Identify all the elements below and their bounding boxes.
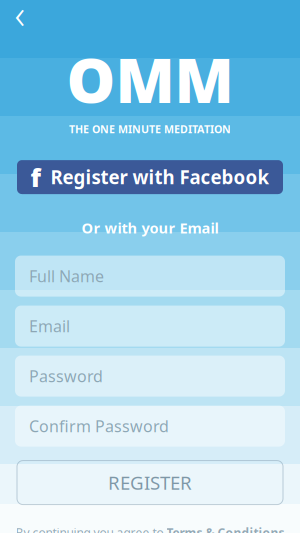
staticText: Register with Facebook (50, 165, 269, 189)
button[interactable]: Password (15, 356, 285, 397)
staticText: THE ONE MINUTE MEDITATION (69, 122, 231, 136)
staticText: f (30, 160, 40, 194)
button[interactable]: By continuing you agree to (15, 525, 284, 533)
staticText: Full Name (29, 265, 104, 287)
button[interactable]: Back (2, 0, 38, 28)
staticText: Terms & Conditions (166, 525, 284, 533)
staticText: ‹ (14, 0, 25, 40)
staticText: REGISTER (108, 470, 192, 495)
button[interactable]: Confirm Password (15, 406, 285, 447)
staticText: Confirm Password (29, 415, 169, 437)
button[interactable]: REGISTER (0, 461, 300, 505)
staticText: By continuing you agree to (15, 525, 163, 533)
button[interactable]: f (0, 160, 300, 194)
button[interactable]: Full Name (15, 256, 285, 297)
staticText: Password (29, 365, 103, 387)
staticText: OMM (66, 38, 233, 120)
staticText: Email (29, 315, 70, 337)
staticText: Or with your Email (81, 218, 218, 238)
button[interactable]: Email (15, 306, 285, 347)
